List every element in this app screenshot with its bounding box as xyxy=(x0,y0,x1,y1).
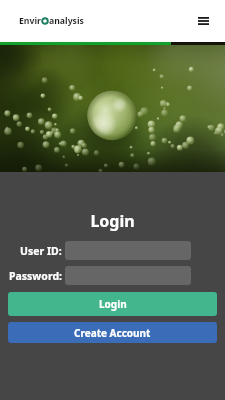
staticText: User ID: xyxy=(20,244,62,258)
staticText: Login xyxy=(0,210,225,232)
staticText: analysis xyxy=(49,15,84,27)
button[interactable]: Create Account xyxy=(8,322,217,343)
staticText: Login xyxy=(99,297,127,311)
staticText: Envir xyxy=(19,15,41,27)
staticText: Create Account xyxy=(74,326,151,340)
button[interactable]: Menu xyxy=(194,12,212,30)
staticText: Password: xyxy=(9,269,62,283)
button[interactable]: Login xyxy=(8,292,217,316)
